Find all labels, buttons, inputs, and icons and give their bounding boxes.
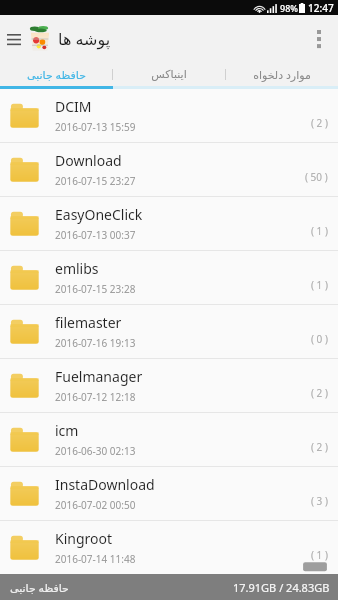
staticText: icm <box>55 421 79 440</box>
button[interactable]: filemaster <box>0 305 338 359</box>
staticText: Kingroot <box>55 529 113 548</box>
button[interactable]: Kingroot <box>0 521 338 574</box>
staticText: موارد دلخواه <box>253 67 311 82</box>
button[interactable]: موارد دلخواه <box>226 62 338 86</box>
button[interactable]: Scroll <box>298 556 332 574</box>
staticText: InstaDownload <box>55 475 155 494</box>
staticText: 2016-07-14 11:48 <box>55 552 136 566</box>
button[interactable]: EasyOneClick <box>0 197 338 251</box>
button[interactable]: اینباکس <box>113 62 225 86</box>
staticText: اینباکس <box>151 68 187 81</box>
staticText: ( 1 ) <box>311 224 328 238</box>
staticText: پوشه ها <box>58 28 111 50</box>
staticText: حافظه جانبی <box>27 67 86 82</box>
staticText: ( 2 ) <box>311 386 328 400</box>
staticText: 2016-07-15 23:27 <box>55 174 136 188</box>
staticText: ( 1 ) <box>311 548 328 562</box>
staticText: Download <box>55 151 122 170</box>
staticText: 98% <box>280 2 298 14</box>
button[interactable] <box>25 22 55 56</box>
button[interactable]: حافظه جانبی <box>0 62 112 86</box>
staticText: ( 0 ) <box>311 332 328 346</box>
button[interactable]: icm <box>0 413 338 467</box>
staticText: DCIM <box>55 97 92 116</box>
staticText: ( 2 ) <box>311 116 328 130</box>
button[interactable]: DCIM <box>0 89 338 143</box>
staticText: Fuelmanager <box>55 367 143 386</box>
staticText: 2016-06-30 02:13 <box>55 444 136 458</box>
staticText: 17.91GB / 24.83GB <box>233 580 330 595</box>
staticText: 2016-07-16 19:13 <box>55 336 136 350</box>
button[interactable]: More options <box>300 17 338 61</box>
button[interactable]: Fuelmanager <box>0 359 338 413</box>
staticText: EasyOneClick <box>55 205 143 224</box>
staticText: 2016-07-15 23:28 <box>55 282 136 296</box>
staticText: 2016-07-02 00:50 <box>55 498 136 512</box>
staticText: 2016-07-13 00:37 <box>55 228 136 242</box>
staticText: حافظه جانبی <box>10 580 69 595</box>
staticText: filemaster <box>55 313 122 332</box>
button[interactable]: Menu <box>3 21 25 57</box>
staticText: ( 2 ) <box>311 440 328 454</box>
staticText: ( 3 ) <box>311 494 328 508</box>
staticText: ( 50 ) <box>305 170 328 184</box>
button[interactable]: emlibs <box>0 251 338 305</box>
staticText: 12:47 <box>308 1 334 15</box>
staticText: emlibs <box>55 259 99 278</box>
staticText: 2016-07-13 15:59 <box>55 120 136 134</box>
staticText: 2016-07-12 12:18 <box>55 390 136 404</box>
staticText: ( 1 ) <box>311 278 328 292</box>
button[interactable]: InstaDownload <box>0 467 338 521</box>
button[interactable]: Download <box>0 143 338 197</box>
